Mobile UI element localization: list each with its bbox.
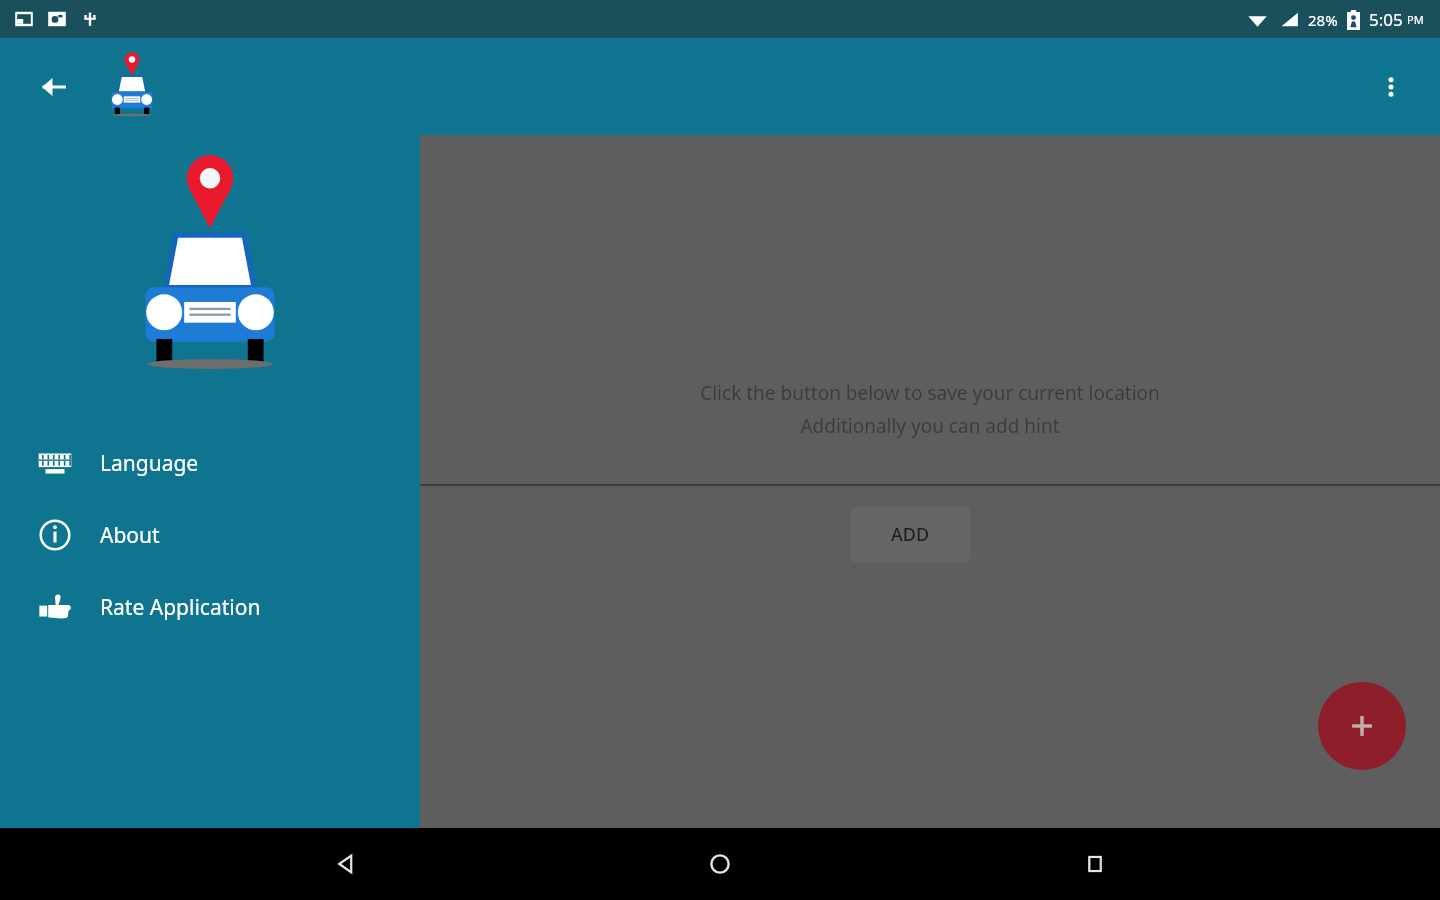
button[interactable]: More options [1368,64,1414,110]
button[interactable]: Back [30,63,78,111]
staticText: Rate Application [100,593,261,622]
button[interactable]: Recent apps [1065,834,1125,894]
staticText: PM [1407,12,1424,27]
staticText: About [100,521,160,550]
button[interactable]: ADD [851,507,970,562]
button[interactable]: Click the button below to save your curr… [420,135,1440,828]
button[interactable]: Add location [1318,682,1406,770]
staticText: Additionally you can add hint [800,413,1060,439]
staticText: 5:05 [1369,8,1403,31]
button[interactable]: Language [0,427,420,499]
staticText: Click the button below to save your curr… [700,380,1160,406]
staticText: Language [100,449,199,478]
button[interactable]: About [0,499,420,571]
button[interactable]: Home [690,834,750,894]
staticText: 28% [1308,10,1338,30]
button[interactable]: Rate Application [0,571,420,643]
staticText: ADD [891,522,930,547]
button[interactable]: Back [315,834,375,894]
